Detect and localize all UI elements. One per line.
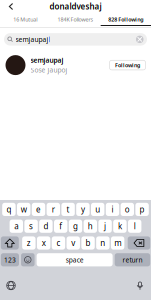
staticText: o	[125, 204, 130, 215]
staticText: s	[29, 221, 33, 231]
button[interactable]: i	[106, 203, 119, 216]
button[interactable]: h	[84, 220, 97, 233]
button[interactable]: Delete	[128, 236, 150, 250]
staticText: t	[67, 204, 70, 215]
button[interactable]: j	[98, 220, 112, 233]
button[interactable]: y	[76, 203, 90, 216]
button[interactable]: o	[121, 203, 134, 216]
button[interactable]: 16 Mutual	[0, 14, 50, 26]
button[interactable]: q	[2, 203, 16, 216]
staticText: d	[43, 221, 48, 231]
staticText: b	[85, 238, 90, 248]
button[interactable]: p	[135, 203, 149, 216]
staticText: x	[42, 238, 46, 248]
button[interactable]: e	[32, 203, 45, 216]
staticText: i	[111, 204, 113, 215]
staticText: h	[88, 221, 93, 231]
staticText: m	[114, 238, 121, 248]
button[interactable]: a	[10, 220, 23, 233]
staticText: space	[66, 255, 84, 264]
button[interactable]: Back	[3, 0, 19, 13]
button[interactable]: n	[96, 236, 109, 250]
button[interactable]: u	[91, 203, 104, 216]
button[interactable]: 184K Followers	[50, 14, 101, 26]
button[interactable]: c	[52, 236, 65, 250]
staticText: donaldveshaj	[49, 1, 101, 12]
button[interactable]: Emoji	[21, 253, 35, 266]
staticText: f	[59, 221, 62, 231]
staticText: semjaupaj	[30, 56, 63, 65]
button[interactable]: b	[81, 236, 95, 250]
staticText: r	[52, 204, 55, 215]
button[interactable]: s	[24, 220, 38, 233]
staticText: 184K Followers	[57, 16, 93, 23]
button[interactable]: semjaupaj	[0, 50, 151, 81]
staticText: u	[95, 204, 100, 215]
staticText: z	[27, 238, 31, 248]
button[interactable]: 828 Following	[101, 14, 151, 26]
staticText: 828 Following	[108, 16, 143, 23]
staticText: e	[36, 204, 41, 215]
button[interactable]: g	[69, 220, 82, 233]
button[interactable]: v	[66, 236, 80, 250]
button[interactable]: Clear search	[136, 36, 143, 43]
button[interactable]: l	[128, 220, 141, 233]
staticText: g	[73, 221, 78, 231]
staticText: l	[134, 221, 136, 231]
button[interactable]: r	[47, 203, 60, 216]
button[interactable]: space	[37, 253, 113, 266]
staticText: semjaupaj	[16, 35, 49, 44]
button[interactable]: k	[113, 220, 127, 233]
button[interactable]: d	[39, 220, 53, 233]
staticText: Following	[115, 62, 140, 69]
staticText: Sose Jaupoj	[30, 66, 67, 74]
button[interactable]: Shift	[1, 236, 19, 250]
staticText: p	[140, 204, 145, 215]
button[interactable]: x	[37, 236, 50, 250]
staticText: 16 Mutual	[13, 16, 37, 23]
button[interactable]: return	[115, 253, 150, 266]
button[interactable]: Dictation	[130, 279, 149, 292]
staticText: c	[56, 238, 60, 248]
staticText: j	[104, 221, 106, 231]
button[interactable]: t	[61, 203, 75, 216]
staticText: k	[118, 221, 122, 231]
staticText: return	[122, 255, 142, 264]
button[interactable]: f	[54, 220, 67, 233]
button[interactable]: z	[22, 236, 35, 250]
button[interactable]: m	[111, 236, 124, 250]
button[interactable]: 123	[1, 253, 19, 266]
staticText: 123	[4, 255, 16, 264]
staticText: y	[81, 204, 85, 215]
staticText: w	[21, 204, 27, 215]
staticText: q	[6, 204, 11, 215]
staticText: n	[100, 238, 105, 248]
button[interactable]: Next keyboard	[1, 279, 20, 292]
staticText: a	[14, 221, 18, 231]
button[interactable]: w	[17, 203, 30, 216]
staticText: v	[71, 238, 75, 248]
